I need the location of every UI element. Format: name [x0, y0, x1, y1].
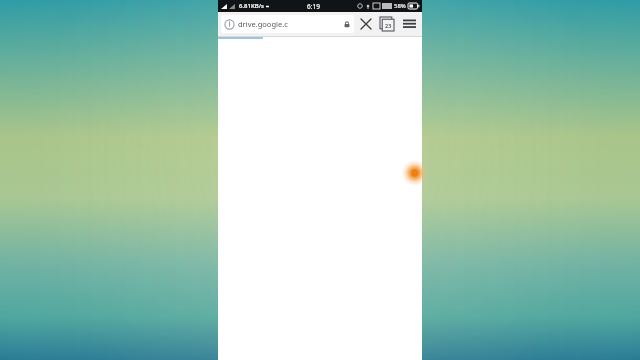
button[interactable]: Switch tabs, 23 open: [377, 14, 397, 34]
button[interactable]: Stop loading: [357, 15, 375, 33]
button[interactable]: Menu: [399, 14, 419, 34]
staticText: 58%: [394, 2, 406, 10]
staticText: 6:19: [307, 2, 320, 11]
other: Secure connection: [343, 20, 351, 28]
staticText: 23: [385, 22, 392, 29]
button[interactable]: drive.google.com/file/d/1: [221, 15, 354, 33]
staticText: drive.google.com/file/d/1: [238, 19, 290, 29]
staticText: 6.81KB/s: [239, 2, 264, 10]
